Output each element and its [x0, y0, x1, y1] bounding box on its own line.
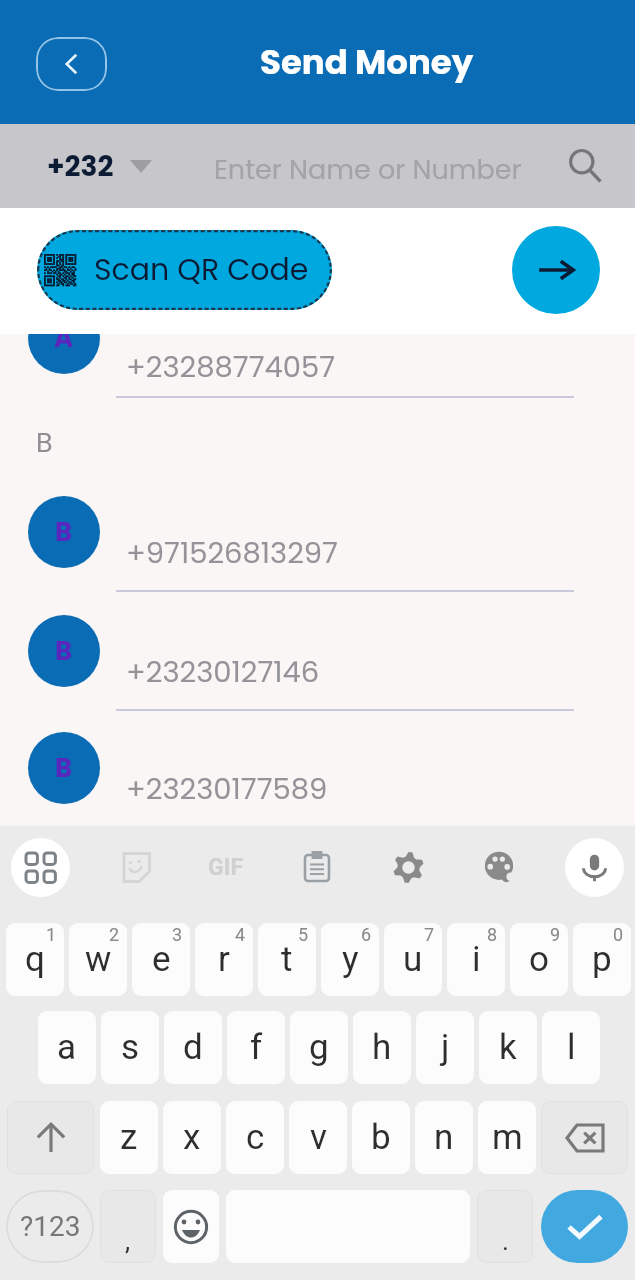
button[interactable]: Clipboard: [292, 842, 342, 892]
button[interactable]: Emoji: [163, 1190, 219, 1263]
staticText: m: [492, 1117, 523, 1158]
staticText: y: [342, 939, 359, 980]
staticText: Scan QR Code: [94, 249, 309, 291]
button[interactable]: ?123: [6, 1190, 94, 1263]
staticText: 9: [550, 924, 561, 945]
button[interactable]: B: [0, 724, 635, 836]
staticText: k: [499, 1027, 517, 1068]
staticText: 8: [487, 924, 498, 945]
staticText: g: [309, 1027, 329, 1068]
button[interactable]: k: [479, 1011, 537, 1084]
staticText: c: [246, 1117, 265, 1158]
button[interactable]: Theme: [474, 842, 524, 892]
button[interactable]: i: [447, 923, 505, 996]
button[interactable]: c: [226, 1101, 284, 1174]
staticText: ,: [125, 1226, 131, 1256]
button[interactable]: w: [69, 923, 127, 996]
staticText: +23288774057: [126, 347, 336, 388]
button[interactable]: Search: [560, 141, 610, 191]
button[interactable]: o: [510, 923, 568, 996]
staticText: 1: [46, 924, 57, 945]
button[interactable]: Shift: [7, 1101, 94, 1174]
button[interactable]: v: [289, 1101, 347, 1174]
button[interactable]: l: [542, 1011, 600, 1084]
button[interactable]: Scan QR Code: [37, 230, 332, 310]
staticText: 4: [235, 924, 246, 945]
staticText: A: [54, 320, 74, 356]
button[interactable]: e: [132, 923, 190, 996]
staticText: f: [250, 1027, 263, 1068]
staticText: p: [592, 939, 612, 980]
staticText: h: [372, 1027, 392, 1068]
button[interactable]: Settings: [383, 842, 433, 892]
button[interactable]: Stickers: [110, 842, 160, 892]
staticText: u: [403, 939, 423, 980]
button[interactable]: f: [227, 1011, 285, 1084]
button[interactable]: h: [353, 1011, 411, 1084]
button[interactable]: m: [478, 1101, 536, 1174]
button[interactable]: a: [38, 1011, 96, 1084]
staticText: B: [55, 633, 73, 669]
staticText: b: [371, 1117, 391, 1158]
staticText: r: [218, 939, 230, 980]
staticText: j: [441, 1027, 450, 1068]
staticText: w: [85, 939, 112, 980]
staticText: a: [57, 1027, 77, 1068]
button[interactable]: x: [163, 1101, 221, 1174]
button[interactable]: z: [100, 1101, 158, 1174]
staticText: B: [36, 424, 53, 462]
button[interactable]: B: [0, 607, 635, 719]
staticText: 2: [109, 924, 120, 945]
button[interactable]: p: [573, 923, 631, 996]
staticText: Enter Name or Number: [214, 151, 522, 189]
button[interactable]: s: [101, 1011, 159, 1084]
staticText: l: [567, 1027, 576, 1068]
staticText: 6: [361, 924, 372, 945]
button[interactable]: y: [321, 923, 379, 996]
staticText: n: [434, 1117, 454, 1158]
button[interactable]: ,: [100, 1190, 156, 1263]
staticText: +23230177589: [126, 769, 328, 810]
button[interactable]: d: [164, 1011, 222, 1084]
staticText: 0: [613, 924, 624, 945]
staticText: q: [25, 939, 45, 980]
staticText: +971526813297: [126, 533, 338, 574]
button[interactable]: Backspace: [541, 1101, 628, 1174]
staticText: s: [121, 1027, 140, 1068]
button[interactable]: .: [477, 1190, 533, 1263]
button[interactable]: B: [0, 488, 635, 600]
staticText: v: [310, 1117, 327, 1158]
staticText: o: [529, 939, 549, 980]
staticText: 3: [172, 924, 183, 945]
staticText: ?123: [20, 1210, 81, 1243]
staticText: B: [55, 514, 73, 550]
staticText: 7: [424, 924, 435, 945]
staticText: d: [183, 1027, 203, 1068]
staticText: z: [120, 1117, 138, 1158]
staticText: Send Money: [260, 38, 474, 86]
button[interactable]: b: [352, 1101, 410, 1174]
staticText: i: [472, 939, 481, 980]
button[interactable]: u: [384, 923, 442, 996]
staticText: e: [152, 939, 171, 980]
button[interactable]: Back: [36, 37, 107, 91]
button[interactable]: n: [415, 1101, 473, 1174]
button[interactable]: t: [258, 923, 316, 996]
button[interactable]: Voice input: [565, 838, 624, 897]
staticText: +232: [47, 147, 114, 186]
staticText: +23230127146: [126, 652, 320, 693]
button[interactable]: g: [290, 1011, 348, 1084]
button[interactable]: +232: [47, 124, 152, 208]
staticText: GIF: [208, 854, 244, 881]
staticText: .: [502, 1226, 509, 1256]
button[interactable]: Apps: [11, 838, 70, 897]
staticText: 5: [298, 924, 309, 945]
button[interactable]: q: [6, 923, 64, 996]
button[interactable]: Enter: [541, 1190, 628, 1263]
button[interactable]: Continue: [512, 226, 600, 314]
button[interactable]: j: [416, 1011, 474, 1084]
button[interactable]: GIF: [201, 842, 251, 892]
button[interactable]: r: [195, 923, 253, 996]
staticText: x: [183, 1117, 201, 1158]
